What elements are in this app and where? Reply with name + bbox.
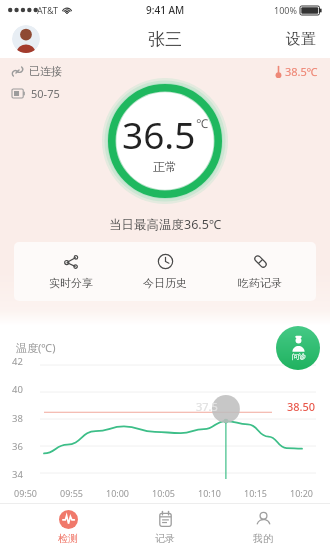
staticText: 10:15 xyxy=(244,487,268,499)
staticText: 9:41 AM xyxy=(146,3,185,17)
staticText: 我的 xyxy=(253,532,273,545)
staticText: 张三 xyxy=(148,29,182,50)
button[interactable]: 实时分享 xyxy=(33,251,109,292)
button[interactable]: Profile avatar xyxy=(12,25,40,53)
staticText: 37.5 xyxy=(196,399,218,414)
staticText: 34 xyxy=(12,468,23,481)
staticText: 正常 xyxy=(153,159,177,174)
staticText: 温度(℃) xyxy=(16,340,56,355)
staticText: 38.5℃ xyxy=(285,64,318,79)
staticText: 10:10 xyxy=(198,487,222,499)
staticText: 38.50 xyxy=(287,399,316,414)
staticText: 当日最高温度36.5℃ xyxy=(109,216,222,233)
staticText: 09:50 xyxy=(14,487,38,499)
staticText: 问诊 xyxy=(292,352,306,361)
staticText: 设置 xyxy=(286,30,316,49)
staticText: 100% xyxy=(274,4,297,16)
staticText: 42 xyxy=(12,355,23,368)
staticText: 吃药记录 xyxy=(238,276,282,290)
staticText: AT&T xyxy=(37,4,58,16)
button[interactable]: 今日历史 xyxy=(127,251,203,292)
button[interactable]: 记录 xyxy=(135,506,195,549)
staticText: 38 xyxy=(12,412,23,425)
staticText: 10:05 xyxy=(152,487,176,499)
staticText: 实时分享 xyxy=(49,276,93,290)
staticText: 检测 xyxy=(58,532,78,545)
staticText: 10:20 xyxy=(290,487,314,499)
staticText: 今日历史 xyxy=(143,276,187,290)
button[interactable]: 问诊 Online consultation xyxy=(276,326,320,370)
staticText: 50-75 xyxy=(31,86,60,101)
staticText: 09:55 xyxy=(60,487,84,499)
button[interactable]: 我的 xyxy=(233,506,293,549)
button[interactable]: 检测 xyxy=(38,506,98,549)
staticText: 36.5 xyxy=(122,109,196,159)
button[interactable]: 设置 xyxy=(272,22,330,57)
staticText: 10:00 xyxy=(106,487,130,499)
staticText: 40 xyxy=(12,383,23,396)
staticText: 已连接 xyxy=(29,64,62,78)
staticText: 36 xyxy=(12,440,23,453)
button[interactable]: 吃药记录 xyxy=(222,251,298,292)
staticText: 记录 xyxy=(155,532,175,545)
staticText: ℃ xyxy=(196,115,208,131)
